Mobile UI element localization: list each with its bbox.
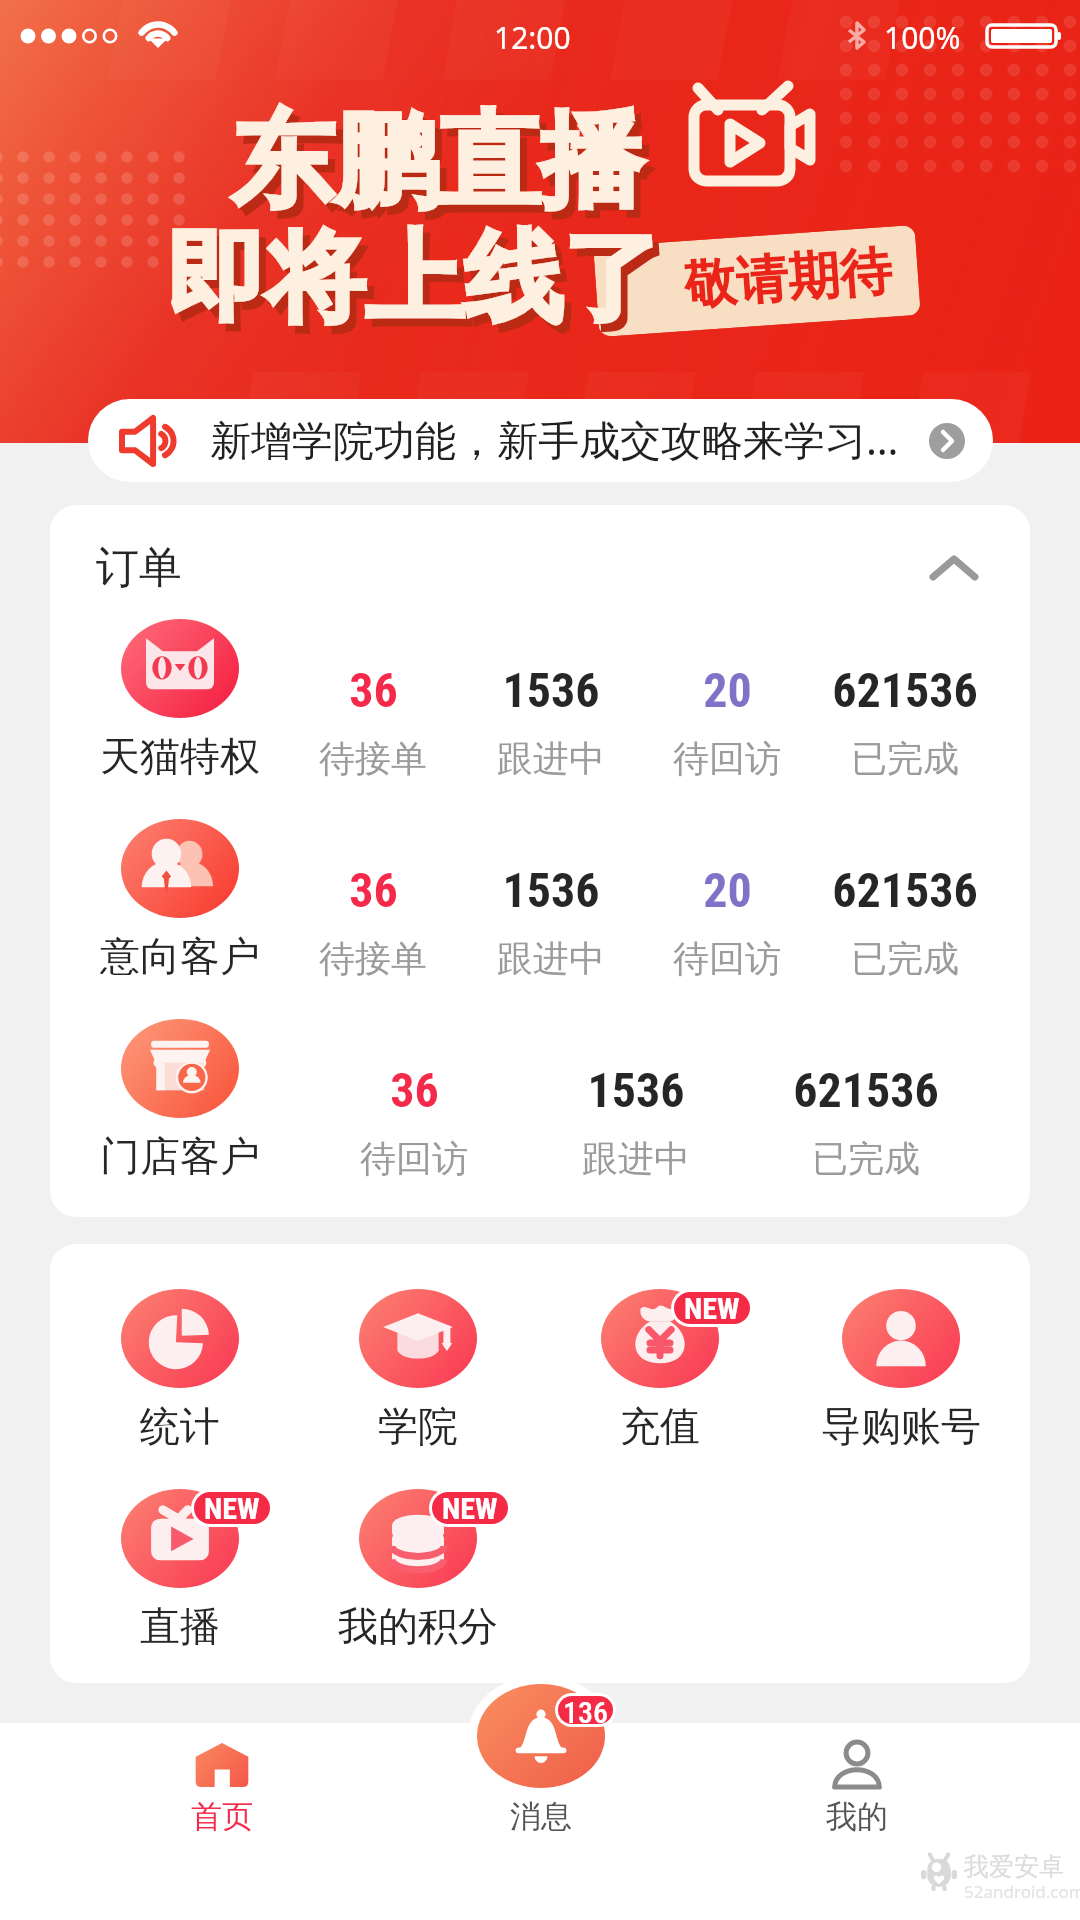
staticText: 跟进中	[582, 1136, 690, 1181]
button[interactable]: Messages tab	[456, 1723, 626, 1863]
staticText: 20	[703, 662, 752, 718]
staticText: 已完成	[851, 736, 959, 781]
staticText: 意向客户	[100, 931, 260, 981]
button[interactable]: NEW	[61, 1489, 299, 1664]
button[interactable]: Open announcement	[929, 423, 965, 459]
button[interactable]: 订单	[70, 525, 290, 605]
staticText: NEW	[442, 1492, 498, 1523]
staticText: 即将上线了	[174, 225, 669, 350]
staticText: 621536	[793, 1062, 939, 1118]
staticText: 学院	[378, 1401, 458, 1451]
staticText: 天猫特权	[100, 731, 260, 781]
staticText: 我爱安卓	[964, 1851, 1064, 1882]
staticText: 待回访	[360, 1136, 468, 1181]
button[interactable]: 天猫特权	[50, 619, 1030, 819]
staticText: 充值	[620, 1401, 700, 1451]
staticText: 消息	[510, 1797, 572, 1836]
staticText: 首页	[191, 1797, 253, 1836]
staticText: 订单	[96, 541, 182, 595]
staticText: 待回访	[673, 936, 781, 981]
staticText: 1536	[587, 1062, 685, 1118]
staticText: NEW	[204, 1492, 260, 1523]
button[interactable]: 导购账号	[782, 1289, 1020, 1464]
staticText: 待回访	[673, 736, 781, 781]
staticText: 36	[349, 662, 398, 718]
staticText: 待接单	[319, 936, 427, 981]
button[interactable]: 意向客户	[50, 819, 1030, 1019]
staticText: 20	[703, 862, 752, 918]
staticText: 统计	[140, 1401, 220, 1451]
staticText: 导购账号	[821, 1401, 981, 1451]
staticText: 1536	[502, 862, 600, 918]
staticText: 直播	[140, 1601, 220, 1651]
staticText: 东鹏直播	[231, 97, 643, 227]
button[interactable]: 新增学院功能，新手成交攻略来学习…	[88, 399, 993, 482]
button[interactable]: Notifications	[468, 1675, 614, 1797]
button[interactable]: NEW	[541, 1289, 779, 1464]
button[interactable]: 学院	[299, 1289, 537, 1464]
staticText: 待接单	[319, 736, 427, 781]
staticText: 52android.com	[964, 1880, 1080, 1903]
staticText: 36	[349, 862, 398, 918]
staticText: 621536	[832, 862, 978, 918]
staticText: 敬请期待	[682, 239, 894, 319]
staticText: 100%	[884, 17, 961, 58]
button[interactable]: 首页	[137, 1723, 307, 1863]
staticText: 跟进中	[497, 736, 605, 781]
staticText: 我的积分	[338, 1601, 498, 1651]
button[interactable]: 我的	[772, 1723, 942, 1863]
staticText: 12:00	[494, 17, 571, 58]
staticText: 我的	[826, 1797, 888, 1836]
staticText: 136	[563, 1696, 608, 1723]
button[interactable]: 统计	[61, 1289, 299, 1464]
staticText: 新增学院功能，新手成交攻略来学习…	[210, 411, 899, 467]
staticText: 已完成	[812, 1136, 920, 1181]
staticText: NEW	[684, 1292, 740, 1323]
staticText: 1536	[502, 662, 600, 718]
staticText: 东鹏直播	[238, 105, 650, 235]
button[interactable]: NEW	[299, 1489, 537, 1664]
staticText: 36	[390, 1062, 439, 1118]
button[interactable]: 门店客户	[50, 1019, 1030, 1217]
staticText: 已完成	[851, 936, 959, 981]
staticText: 621536	[832, 662, 978, 718]
staticText: 即将上线了	[167, 217, 662, 342]
staticText: 门店客户	[100, 1131, 260, 1181]
staticText: 跟进中	[497, 936, 605, 981]
button[interactable]: Collapse orders	[904, 523, 1004, 613]
